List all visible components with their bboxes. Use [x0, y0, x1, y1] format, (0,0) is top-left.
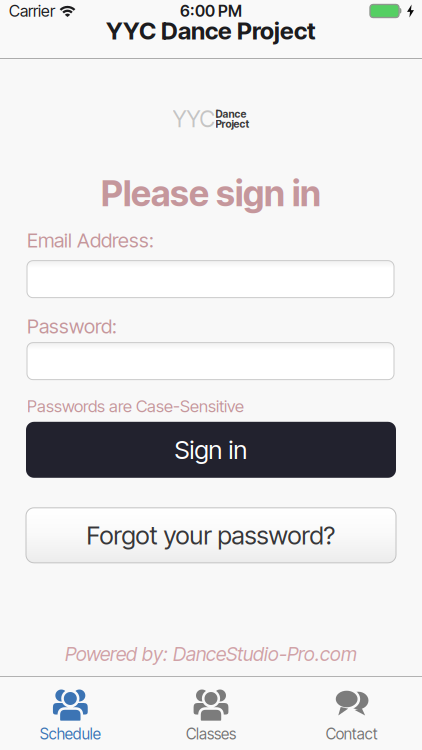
- staticText: Email Address:: [27, 229, 154, 252]
- staticText: Please sign in: [101, 173, 321, 214]
- staticText: Password:: [27, 315, 117, 338]
- staticText: Project: [215, 118, 249, 130]
- button[interactable]: Text field: [27, 261, 394, 298]
- staticText: YYC: [172, 106, 214, 132]
- button[interactable]: Text field: [27, 343, 394, 380]
- button[interactable]: Schedule: [0, 677, 141, 743]
- staticText: Schedule: [40, 725, 101, 743]
- button[interactable]: Powered by: DanceStudio-Pro.com: [65, 643, 357, 665]
- staticText: Classes: [186, 725, 236, 743]
- staticText: 6:00 PM: [180, 2, 242, 20]
- staticText: Passwords are Case-Sensitive: [27, 397, 244, 416]
- staticText: YYC Dance Project: [106, 17, 316, 45]
- button[interactable]: Sign in: [26, 422, 396, 478]
- staticText: Carrier: [9, 2, 55, 20]
- button[interactable]: Forgot your password?: [26, 508, 396, 563]
- staticText: Dance: [215, 108, 246, 120]
- staticText: Powered by: DanceStudio-Pro.com: [65, 643, 357, 665]
- button[interactable]: Contact: [281, 677, 422, 743]
- staticText: Sign in: [174, 435, 247, 464]
- button[interactable]: Classes: [141, 677, 281, 743]
- staticText: Contact: [326, 725, 378, 743]
- staticText: Forgot your password?: [86, 521, 335, 550]
